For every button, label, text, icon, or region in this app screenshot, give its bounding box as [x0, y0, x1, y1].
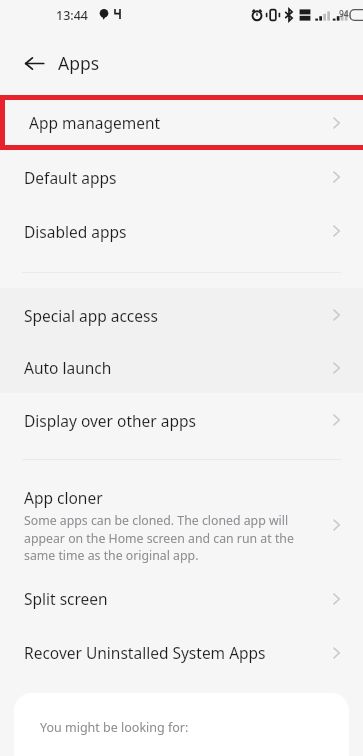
- button[interactable]: Disabled apps: [0, 204, 363, 258]
- button[interactable]: Display over other apps: [0, 393, 363, 447]
- staticText: Recover Uninstalled System Apps: [24, 642, 266, 663]
- staticText: Auto launch: [24, 357, 112, 378]
- button[interactable]: Split screen: [0, 572, 363, 625]
- staticText: Some apps can be cloned. The cloned app …: [24, 512, 320, 563]
- button[interactable]: Back: [13, 42, 55, 84]
- staticText: App management: [29, 112, 161, 133]
- staticText: Special app access: [24, 305, 158, 326]
- staticText: Default apps: [24, 167, 117, 188]
- button[interactable]: You might be looking for:: [14, 693, 349, 756]
- button[interactable]: App cloner: [0, 477, 363, 572]
- button[interactable]: Default apps: [0, 150, 363, 204]
- staticText: 13:44: [56, 7, 89, 24]
- staticText: App cloner: [24, 487, 103, 508]
- button[interactable]: App management: [5, 100, 363, 145]
- staticText: Apps: [58, 51, 100, 75]
- button[interactable]: Special app access: [0, 288, 363, 342]
- staticText: Disabled apps: [24, 221, 127, 242]
- staticText: You might be looking for:: [40, 719, 189, 736]
- button[interactable]: Recover Uninstalled System Apps: [0, 625, 363, 680]
- staticText: 94: [339, 8, 349, 20]
- staticText: Split screen: [24, 588, 108, 609]
- button[interactable]: Auto launch: [0, 342, 363, 393]
- staticText: Display over other apps: [24, 410, 196, 431]
